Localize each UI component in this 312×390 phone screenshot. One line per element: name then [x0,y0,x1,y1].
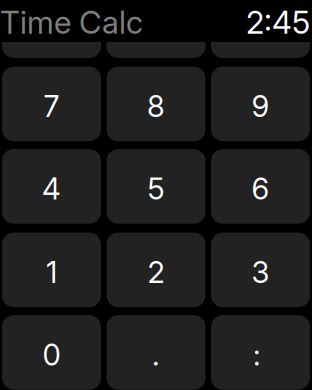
staticText: 4 [42,171,61,207]
staticText: 9 [251,89,269,124]
button[interactable]: 5 [106,149,205,224]
staticText: 5 [147,171,164,207]
button[interactable]: 8 [106,67,205,141]
staticText: - [254,5,267,41]
button[interactable]: 2 [106,233,205,307]
button[interactable]: : [211,315,310,390]
button[interactable]: 3 [211,233,310,307]
button[interactable]: 7 [2,67,101,141]
staticText: : [253,337,261,373]
button[interactable]: . [106,315,205,390]
button[interactable]: 1 [2,233,101,307]
staticText: 8 [147,89,165,124]
staticText: 0 [42,337,60,373]
staticText: . [152,337,160,373]
staticText: 3 [251,255,269,290]
staticText: 7 [43,89,59,124]
staticText: 2:45 [246,4,310,41]
button[interactable]: 0 [2,315,101,390]
staticText: 2 [147,255,164,290]
button[interactable]: 6 [211,149,310,224]
staticText: C [41,5,62,41]
staticText: 6 [251,171,269,207]
button[interactable]: + [106,0,205,58]
button[interactable]: 9 [211,67,310,141]
button[interactable]: - [211,0,310,58]
staticText: Time Calc [0,4,143,41]
button[interactable]: 4 [2,149,101,224]
button[interactable]: C [2,0,101,58]
staticText: 1 [46,255,57,290]
